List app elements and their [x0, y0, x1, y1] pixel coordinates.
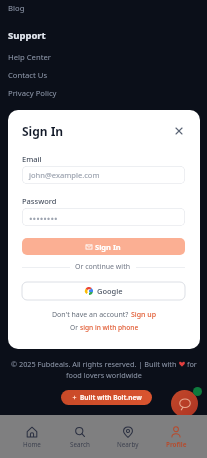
button[interactable]: john@example.com [22, 166, 185, 184]
button[interactable]: Profile [152, 426, 200, 449]
button[interactable]: Blog [8, 3, 25, 13]
button[interactable]: Google [22, 282, 185, 300]
staticText: •••••••• [29, 212, 58, 225]
button[interactable]: Help Center [8, 52, 51, 62]
staticText: Search [70, 440, 90, 449]
staticText: food lovers worldwide [66, 370, 142, 380]
staticText: Home [23, 440, 41, 449]
staticText: Google [97, 286, 123, 296]
staticText: Don't have an account? [52, 310, 131, 320]
button[interactable]: sign in with phone [80, 323, 139, 332]
button[interactable]: Nearby [104, 426, 152, 449]
staticText: Sign In [95, 242, 121, 252]
staticText: Or continue with [75, 262, 131, 272]
staticText: Sign In [22, 123, 64, 139]
button[interactable]: Sign In [22, 238, 185, 255]
button[interactable]: Built with Bolt.new [61, 390, 152, 405]
staticText: Support [8, 29, 46, 42]
button[interactable]: Privacy Policy [8, 88, 57, 98]
staticText: Nearby [117, 440, 139, 449]
button[interactable]: Search [56, 426, 104, 449]
staticText: Profile [166, 440, 187, 449]
staticText: Password [22, 196, 57, 206]
staticText: for [185, 359, 197, 369]
button[interactable]: Chat support [171, 390, 198, 417]
button[interactable]: •••••••• [22, 208, 185, 226]
button[interactable]: Home [7, 426, 56, 449]
staticText: john@example.com [29, 170, 100, 180]
button[interactable]: Close [172, 124, 186, 138]
button[interactable]: Contact Us [8, 70, 48, 80]
staticText: Or [70, 323, 80, 332]
staticText: Built with Bolt.new [80, 393, 142, 402]
button[interactable]: Sign up [131, 310, 157, 320]
staticText: © 2025 Fubdeals. All rights reserved. | … [11, 359, 179, 369]
staticText: Email [22, 154, 42, 164]
